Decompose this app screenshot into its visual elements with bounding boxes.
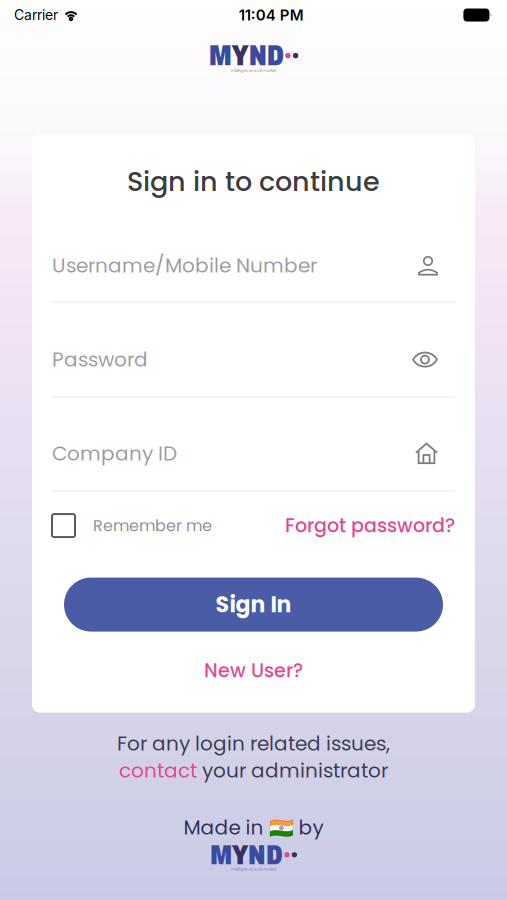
staticText: Forgot password? — [285, 512, 455, 539]
staticText: D — [266, 839, 283, 870]
staticText: Carrier — [14, 6, 58, 23]
staticText: M — [210, 839, 232, 870]
staticText: Remember me — [93, 514, 212, 537]
button[interactable]: New User? — [204, 656, 303, 686]
button[interactable]: Company ID — [32, 398, 475, 492]
staticText: New User? — [204, 657, 303, 684]
button[interactable]: Password — [32, 303, 475, 398]
staticText: Sign In — [215, 589, 291, 620]
staticText: D — [267, 40, 284, 71]
staticText: intelligence automated — [230, 68, 276, 73]
staticText: Made in 🇮🇳 by — [183, 814, 323, 842]
button[interactable]: contact — [119, 757, 197, 785]
button[interactable]: Username/Mobile Number — [32, 230, 475, 303]
staticText: N — [248, 839, 266, 870]
staticText: contact — [119, 757, 197, 785]
staticText: For any login related issues, — [117, 730, 390, 758]
button[interactable]: Remember me checkbox — [52, 514, 75, 537]
staticText: Y — [232, 839, 248, 870]
staticText: intelligence automated — [230, 866, 276, 872]
button[interactable]: Sign In — [64, 578, 443, 632]
staticText: Y — [232, 40, 249, 71]
staticText: N — [249, 40, 267, 71]
staticText: your administrator — [197, 757, 388, 785]
staticText: Password — [52, 346, 148, 374]
staticText: Company ID — [52, 440, 177, 468]
button[interactable]: Forgot password? — [285, 512, 455, 539]
staticText: M — [209, 40, 232, 71]
staticText: Sign in to continue — [127, 163, 380, 200]
staticText: 11:04 PM — [239, 6, 304, 24]
staticText: Username/Mobile Number — [52, 252, 317, 280]
